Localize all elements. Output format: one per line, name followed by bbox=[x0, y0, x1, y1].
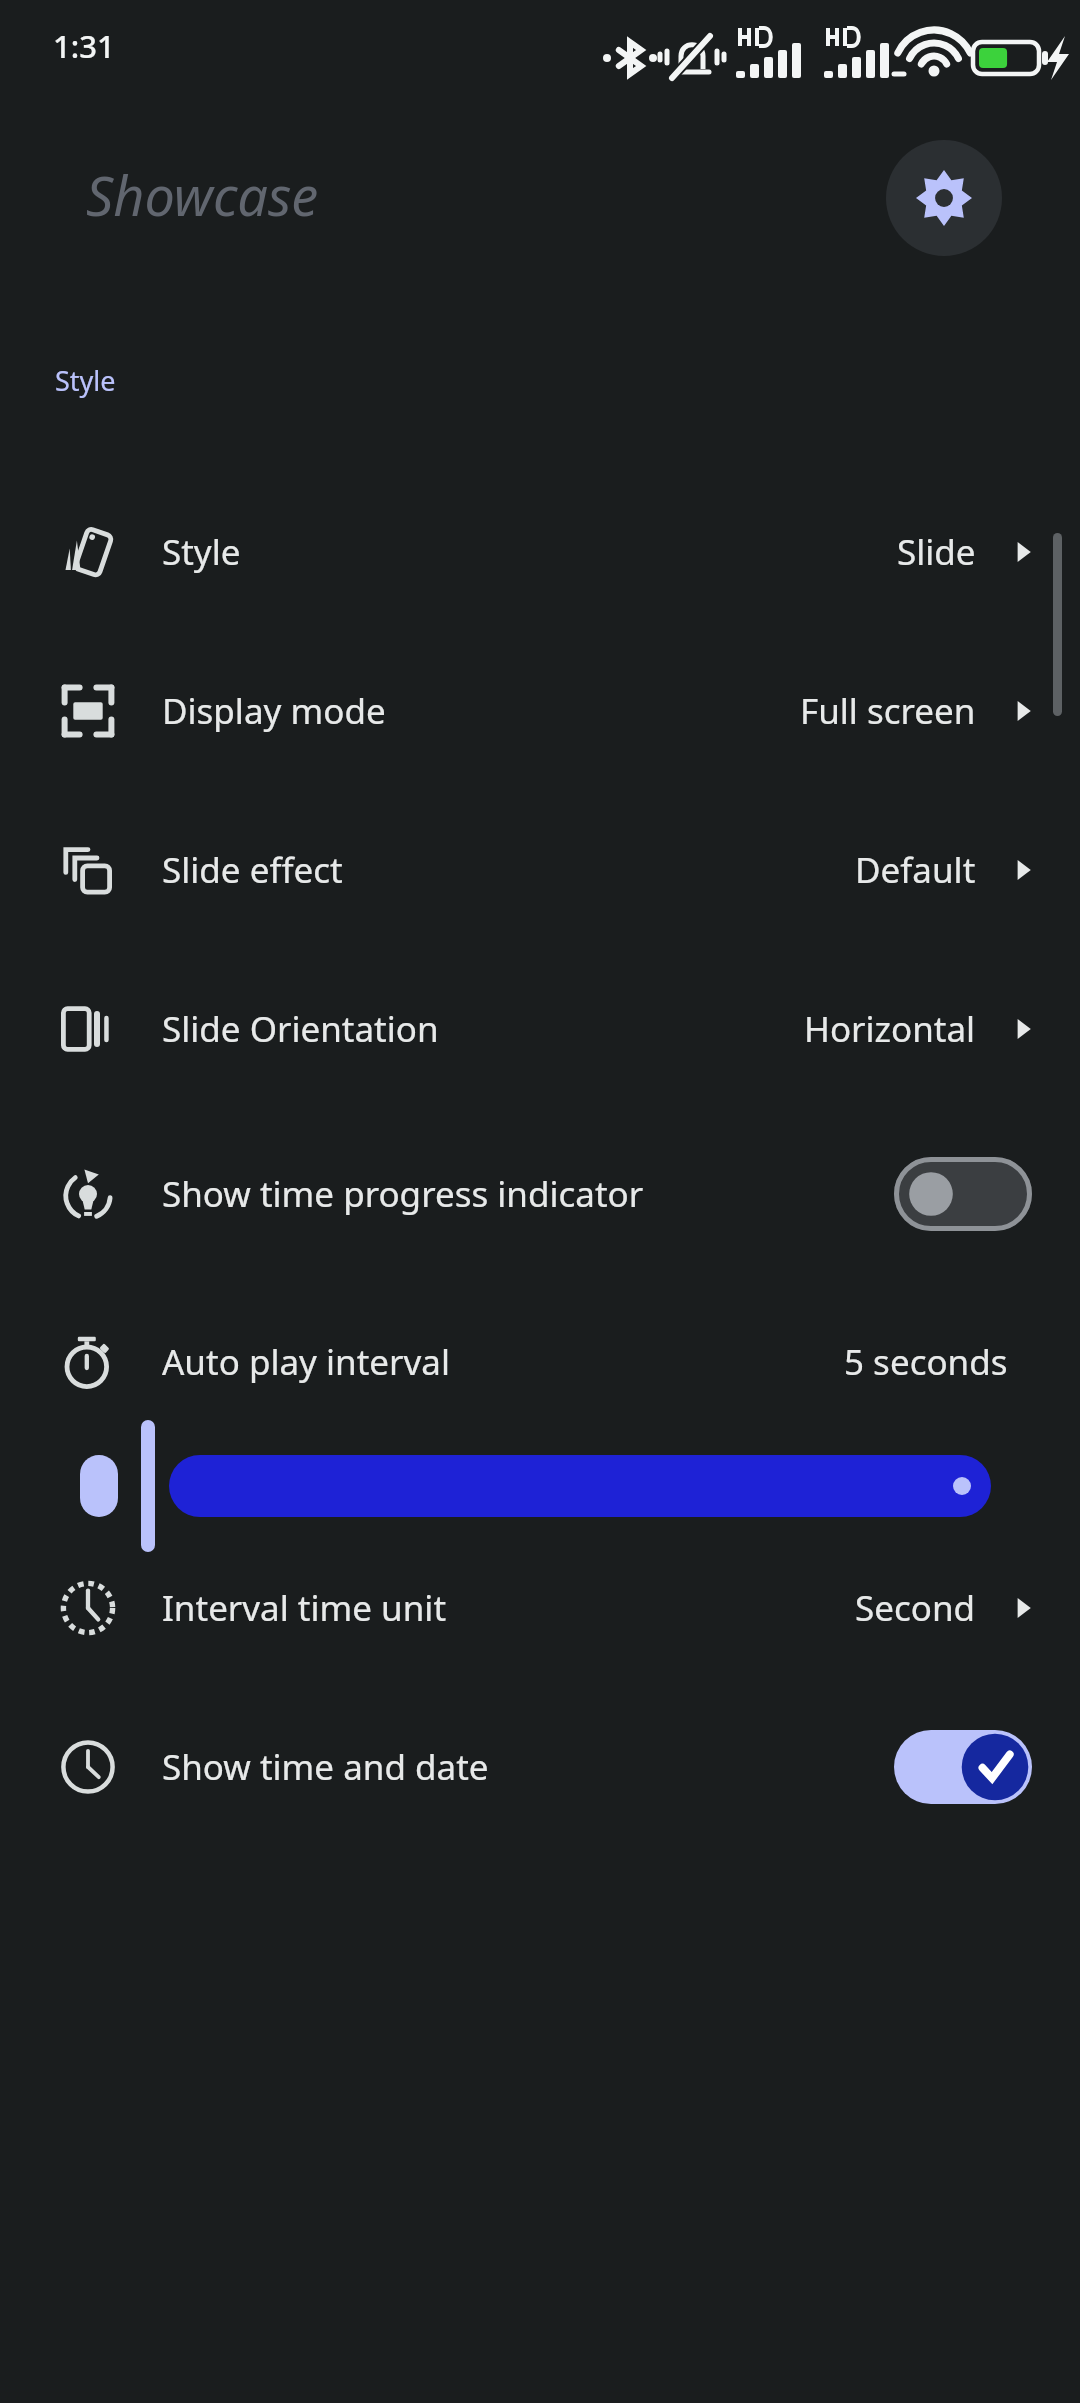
button[interactable]: Display mode bbox=[0, 667, 1080, 755]
button[interactable]: Show time progress indicator bbox=[0, 1150, 1080, 1238]
staticText: Slide bbox=[897, 528, 976, 576]
staticText: Interval time unit bbox=[162, 1584, 447, 1632]
staticText: Auto play interval bbox=[162, 1338, 450, 1386]
button[interactable] bbox=[0, 1434, 1080, 1538]
button[interactable]: Slide effect bbox=[0, 826, 1080, 914]
staticText: Show time progress indicator bbox=[162, 1170, 644, 1218]
button[interactable]: Show time and date bbox=[0, 1723, 1080, 1811]
button[interactable]: Slide Orientation bbox=[0, 985, 1080, 1073]
button[interactable]: Settings bbox=[886, 140, 1002, 256]
staticText: Showcase bbox=[86, 158, 319, 232]
staticText: Default bbox=[855, 846, 976, 894]
staticText: Slide Orientation bbox=[162, 1005, 439, 1053]
staticText: 1:31 bbox=[53, 25, 115, 67]
staticText: Second bbox=[855, 1584, 976, 1632]
staticText: Display mode bbox=[162, 687, 386, 735]
staticText: Show time and date bbox=[162, 1743, 489, 1791]
button[interactable]: Auto play interval bbox=[0, 1318, 1080, 1406]
staticText: Full screen bbox=[800, 687, 976, 735]
staticText: Style bbox=[162, 528, 241, 576]
staticText: Horizontal bbox=[804, 1005, 976, 1053]
staticText: Slide effect bbox=[162, 846, 343, 894]
staticText: 5 seconds bbox=[844, 1338, 1008, 1386]
staticText: Style bbox=[55, 362, 116, 399]
button[interactable]: Interval time unit bbox=[0, 1564, 1080, 1652]
button[interactable]: Style bbox=[0, 508, 1080, 596]
